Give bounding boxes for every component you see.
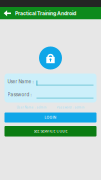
staticText: LOGIN: [44, 115, 56, 120]
button[interactable]: LOGIN: [4, 112, 96, 122]
staticText: User Name : admin: [16, 106, 46, 109]
button[interactable]: SEE SERVICE CODE: [4, 126, 96, 136]
staticText: User Name :: [7, 79, 33, 84]
staticText: SEE SERVICE CODE: [33, 129, 67, 133]
button[interactable]: Back: [0, 7, 15, 19]
staticText: Password :: [7, 92, 31, 97]
staticText: Password : admin: [56, 106, 84, 109]
staticText: Practical Training Android: [15, 10, 76, 16]
